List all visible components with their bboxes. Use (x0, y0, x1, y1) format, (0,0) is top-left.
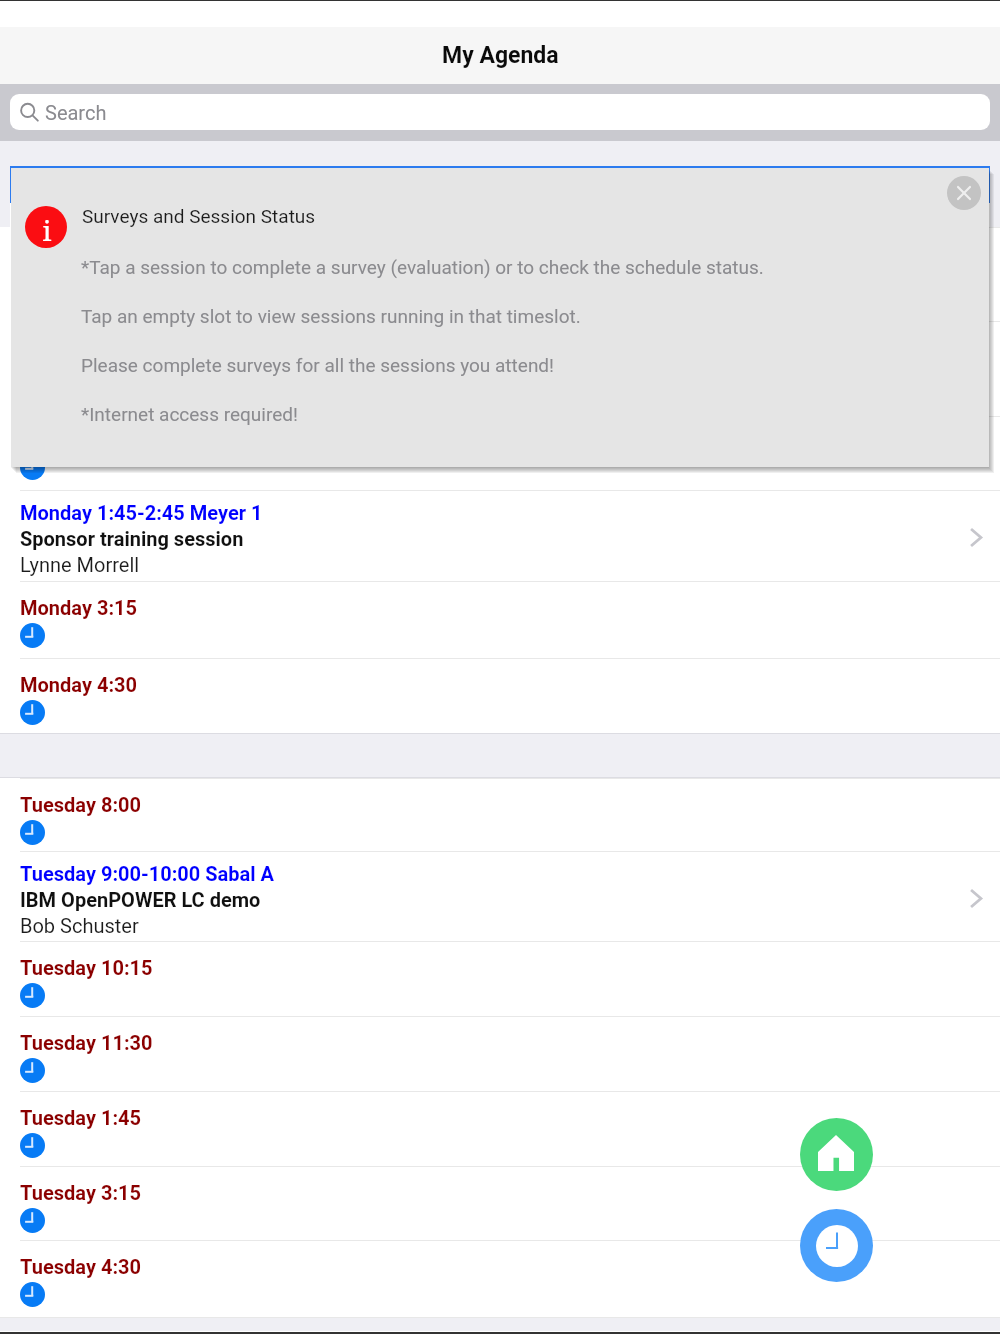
staticText: Monday 3:15 (20, 596, 137, 619)
staticText: *Internet access required! (81, 403, 298, 425)
button[interactable]: Monday 1:45-2:45 Meyer 1 (0, 490, 1000, 581)
button[interactable]: Tuesday 11:30 (0, 1016, 1000, 1091)
staticText: Monday 4:30 (20, 673, 137, 696)
staticText: Tuesday 8:00 (20, 793, 141, 816)
staticText: i (26, 211, 68, 249)
staticText: *Tap a session to complete a survey (eva… (81, 256, 764, 278)
staticText: Tuesday 3:15 (20, 1181, 141, 1204)
button[interactable]: Tuesday 9:00-10:00 Sabal A (0, 851, 1000, 941)
staticText: Tuesday 4:30 (20, 1255, 141, 1278)
staticText: Tuesday 10:15 (20, 956, 153, 979)
button[interactable]: Tuesday 4:30 (0, 1240, 1000, 1315)
staticText: Sponsor training session (20, 527, 244, 550)
button[interactable]: Tuesday 3:15 (0, 1166, 1000, 1240)
button[interactable]: Monday 11:30 (0, 321, 1000, 416)
button[interactable]: Tuesday 8:00 (0, 778, 1000, 851)
staticText: Tuesday 1:45 (20, 1106, 141, 1129)
button[interactable]: Close (947, 176, 981, 210)
button[interactable]: Monday 10:30 (0, 227, 1000, 321)
staticText: Monday 1:45-2:45 Meyer 1 (20, 501, 263, 524)
button[interactable]: Search (10, 94, 990, 130)
staticText: Tap an empty slot to view sessions runni… (81, 305, 581, 327)
staticText: Lynne Morrell (20, 553, 140, 576)
button[interactable]: Monday 12:30 (0, 416, 1000, 490)
staticText: My Agenda (442, 42, 559, 69)
staticText: Bob Schuster (20, 914, 139, 937)
button[interactable]: Now (800, 1209, 873, 1282)
staticText: IBM OpenPOWER LC demo (20, 888, 261, 911)
button[interactable]: Tuesday 1:45 (0, 1091, 1000, 1166)
staticText: Please complete surveys for all the sess… (81, 354, 554, 376)
button[interactable]: Tuesday 10:15 (0, 941, 1000, 1016)
staticText: Search (45, 101, 107, 124)
button[interactable]: Monday 4:30 (0, 658, 1000, 733)
staticText: Monday 10:30 (20, 242, 149, 265)
staticText: Surveys and Session Status (82, 205, 316, 227)
staticText: Tuesday 9:00-10:00 Sabal A (20, 862, 275, 885)
staticText: Tuesday 11:30 (20, 1031, 153, 1054)
button[interactable]: Monday 3:15 (0, 581, 1000, 658)
button[interactable]: Home (800, 1118, 873, 1191)
